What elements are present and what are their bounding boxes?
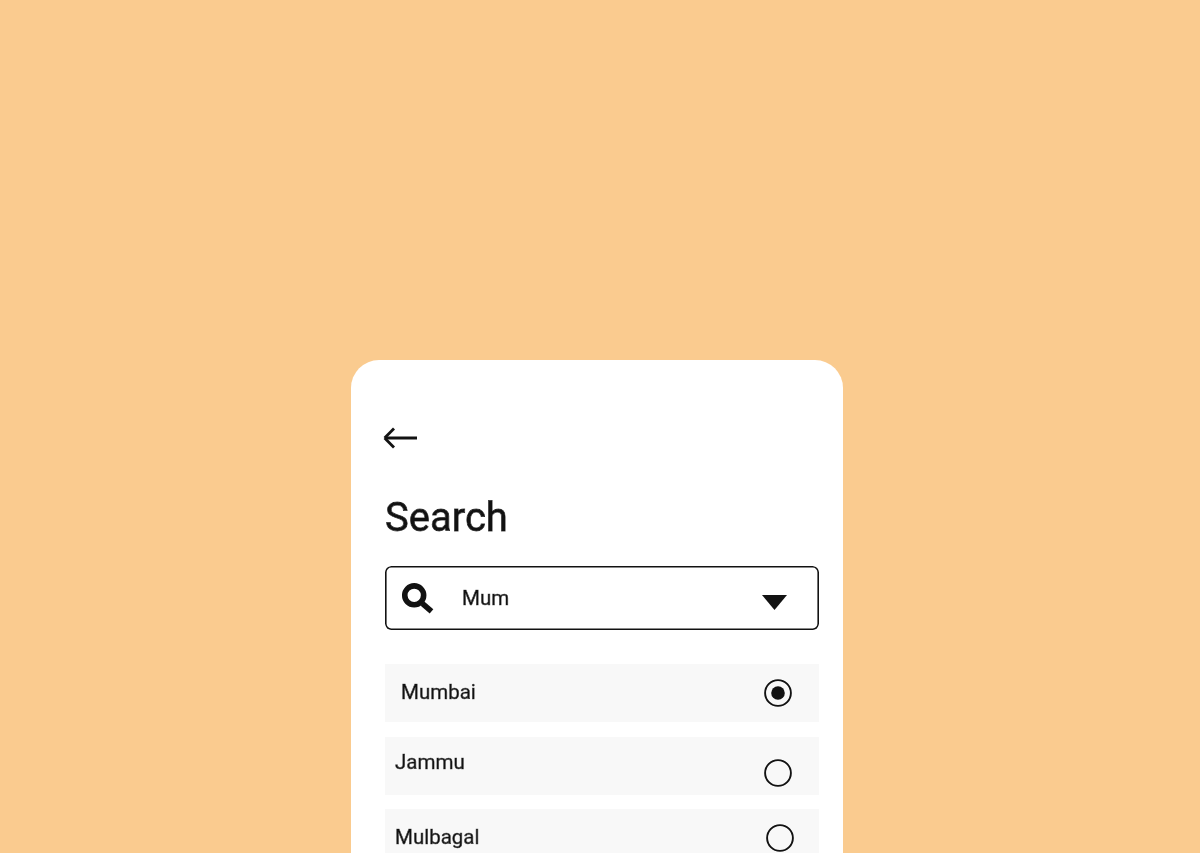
button[interactable]: Show suggestions [750, 579, 798, 627]
staticText: Mulbagal [395, 825, 480, 849]
button[interactable]: Mulbagal [385, 809, 819, 853]
staticText: Search [385, 494, 508, 541]
staticText: Jammu [395, 750, 465, 774]
staticText: Mulbagal [395, 825, 480, 849]
button[interactable]: Back [368, 422, 432, 454]
staticText: Mumbai [401, 680, 476, 704]
staticText: Jammu [395, 750, 465, 774]
staticText: Mumbai [401, 680, 476, 704]
staticText: Mum [462, 586, 510, 610]
staticText: Mum [462, 586, 510, 610]
button[interactable]: Select Jammu [758, 753, 798, 793]
button[interactable]: Select Mumbai [758, 673, 798, 713]
button[interactable]: Mum [385, 566, 819, 630]
button[interactable]: Jammu [385, 737, 819, 795]
staticText: Search [385, 494, 508, 541]
button[interactable]: Select Mulbagal [760, 818, 800, 853]
button[interactable]: Mumbai [385, 664, 819, 722]
